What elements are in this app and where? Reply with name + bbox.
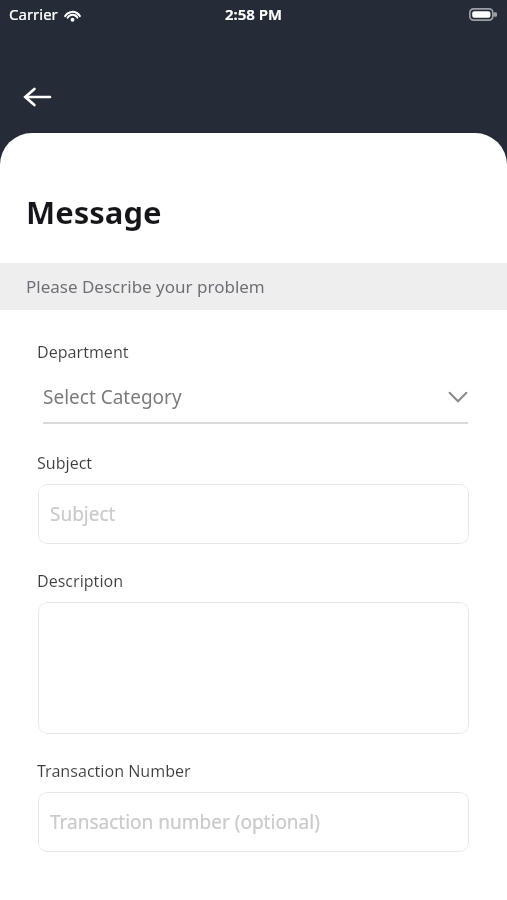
- staticText: Subject: [50, 501, 116, 527]
- staticText: Department: [37, 341, 129, 363]
- staticText: Transaction number (optional): [50, 809, 320, 835]
- staticText: Please Describe your problem: [26, 275, 265, 298]
- staticText: Carrier: [9, 4, 58, 24]
- button[interactable]: Select Category: [38, 380, 469, 424]
- button[interactable]: Back: [14, 74, 60, 120]
- staticText: Message: [26, 191, 162, 233]
- button[interactable]: [38, 602, 469, 734]
- button[interactable]: Transaction number (optional): [38, 792, 469, 852]
- staticText: Transaction Number: [37, 760, 191, 782]
- button[interactable]: Subject: [38, 484, 469, 544]
- staticText: Description: [37, 570, 124, 592]
- staticText: Subject: [37, 452, 93, 474]
- staticText: 2:58 PM: [225, 4, 282, 24]
- staticText: Select Category: [43, 384, 182, 410]
